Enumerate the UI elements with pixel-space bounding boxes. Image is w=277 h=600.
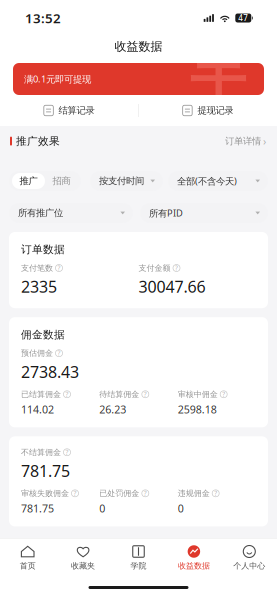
staticText: 不结算佣金	[21, 447, 61, 457]
staticText: 30047.66	[138, 276, 205, 297]
staticText: 支付笔数	[21, 263, 53, 273]
staticText: 学院	[130, 561, 146, 571]
staticText: 114.02	[21, 402, 54, 416]
staticText: 审核失败佣金	[21, 488, 69, 498]
staticText: 已结算佣金	[21, 389, 61, 399]
staticText: 推广效果	[16, 134, 60, 148]
staticText: 结算记录	[59, 105, 95, 116]
button[interactable]: 结算记录	[0, 95, 138, 126]
staticText: 0	[99, 501, 105, 515]
button[interactable]: 个人中心	[222, 545, 277, 571]
staticText: ?	[144, 489, 147, 498]
button[interactable]: 提现记录	[139, 95, 277, 126]
staticText: ?	[222, 390, 225, 398]
staticText: 支付金额	[138, 263, 170, 273]
button[interactable]: 首页	[0, 545, 55, 571]
staticText: 个人中心	[233, 561, 265, 571]
staticText: ›	[263, 134, 266, 148]
staticText: 违规佣金	[178, 488, 210, 498]
staticText: 按支付时间	[99, 175, 144, 187]
staticText: ?	[57, 263, 60, 272]
staticText: 2738.43	[21, 361, 79, 382]
button[interactable]: 收藏夹	[55, 545, 111, 571]
button[interactable]: 全部(不含今天)	[168, 171, 268, 191]
button[interactable]: 所有推广位	[9, 203, 133, 223]
staticText: ?	[73, 489, 76, 498]
staticText: ?	[57, 349, 60, 357]
staticText: 781.75	[21, 460, 70, 481]
staticText: ?	[65, 448, 68, 456]
button[interactable]: 按支付时间	[90, 171, 163, 191]
staticText: 所有推广位	[18, 207, 63, 219]
staticText: 全部(不含今天)	[177, 175, 237, 187]
staticText: 所有PID	[149, 207, 183, 219]
button[interactable]: 订单详情	[225, 134, 266, 148]
button[interactable]: 所有PID	[140, 203, 268, 223]
staticText: 2598.18	[178, 402, 217, 416]
staticText: 2335	[21, 276, 57, 297]
staticText: 0	[178, 501, 184, 515]
staticText: 收益数据	[178, 561, 210, 571]
staticText: 26.23	[99, 402, 126, 416]
button[interactable]: 学院	[111, 545, 166, 571]
button[interactable]: 收益数据	[166, 545, 222, 571]
staticText: 13:52	[25, 9, 61, 27]
staticText: 781.75	[21, 501, 54, 515]
staticText: 已处罚佣金	[99, 488, 139, 498]
staticText: 推广	[19, 175, 37, 187]
staticText: ?	[144, 390, 147, 398]
button[interactable]: 推广	[12, 173, 45, 189]
staticText: 订单数据	[21, 243, 65, 256]
staticText: 招商	[52, 175, 70, 187]
staticText: 满0.1元即可提现	[24, 73, 91, 85]
staticText: 手	[190, 43, 246, 111]
staticText: 首页	[20, 561, 36, 571]
button[interactable]: 招商	[45, 173, 78, 189]
staticText: ?	[65, 390, 68, 398]
staticText: 审核中佣金	[178, 389, 218, 399]
staticText: 提现记录	[197, 105, 233, 116]
staticText: 佣金数据	[21, 328, 65, 341]
staticText: 收益数据	[114, 39, 162, 54]
staticText: 预估佣金	[21, 348, 53, 358]
staticText: ?	[214, 489, 217, 498]
staticText: 待结算佣金	[99, 389, 139, 399]
staticText: ?	[175, 263, 178, 272]
staticText: 订单详情	[225, 135, 261, 147]
staticText: 47	[238, 13, 248, 23]
staticText: 收藏夹	[71, 561, 95, 571]
